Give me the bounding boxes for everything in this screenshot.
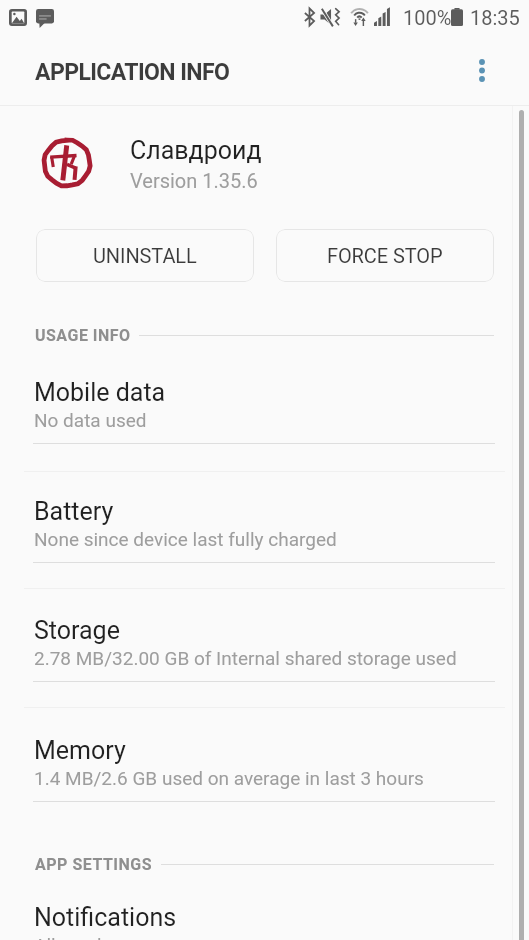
staticText: Battery (34, 497, 114, 526)
staticText: Memory (34, 736, 126, 765)
button[interactable]: UNINSTALL (36, 229, 254, 282)
staticText: No data used (34, 409, 147, 431)
staticText: 2.78 MB/32.00 GB of Internal shared stor… (34, 647, 457, 669)
staticText: Славдроид (130, 136, 262, 165)
staticText: UNINSTALL (93, 244, 197, 267)
button[interactable]: Storage (0, 604, 529, 702)
staticText: APP SETTINGS (35, 855, 153, 874)
staticText: Version 1.35.6 (130, 169, 258, 192)
staticText: 1.4 MB/2.6 GB used on average in last 3 … (34, 767, 424, 789)
staticText: Allowed (34, 934, 102, 940)
button[interactable]: Mobile data (0, 366, 529, 464)
button[interactable]: More options (461, 49, 503, 91)
staticText: Mobile data (34, 378, 166, 407)
staticText: None since device last fully charged (34, 528, 337, 550)
button[interactable]: Memory (0, 724, 529, 822)
staticText: Storage (34, 616, 120, 645)
button[interactable]: Notifications (0, 900, 529, 940)
button[interactable]: FORCE STOP (276, 229, 494, 282)
staticText: Notifications (34, 903, 177, 932)
staticText: 100% (403, 6, 452, 29)
staticText: 18:35 (470, 6, 520, 29)
button[interactable]: Battery (0, 485, 529, 583)
staticText: APPLICATION INFO (35, 59, 230, 86)
staticText: USAGE INFO (35, 326, 131, 345)
staticText: FORCE STOP (327, 244, 443, 267)
